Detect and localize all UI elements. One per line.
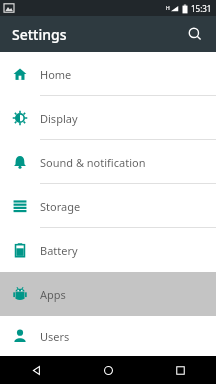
button[interactable]: Back	[0, 356, 72, 384]
button[interactable]: Apps	[0, 272, 216, 316]
button[interactable]: Home	[0, 52, 216, 96]
staticText: Settings	[12, 25, 67, 44]
button[interactable]: Home	[72, 356, 144, 384]
staticText: Sound & notification	[40, 155, 146, 170]
button[interactable]: Storage	[0, 184, 216, 228]
staticText: 15:31	[191, 3, 212, 14]
button[interactable]: Users	[0, 316, 216, 356]
button[interactable]: Battery	[0, 228, 216, 272]
staticText: Display	[40, 111, 78, 126]
staticText: Apps	[40, 287, 66, 302]
button[interactable]: Sound & notification	[0, 140, 216, 184]
button[interactable]: Search	[180, 19, 210, 49]
staticText: H	[166, 5, 170, 12]
staticText: Battery	[40, 243, 78, 258]
staticText: Storage	[40, 199, 81, 214]
button[interactable]: Display	[0, 96, 216, 140]
staticText: Users	[40, 329, 70, 344]
button[interactable]: Recent apps	[144, 356, 216, 384]
staticText: Home	[40, 67, 72, 82]
